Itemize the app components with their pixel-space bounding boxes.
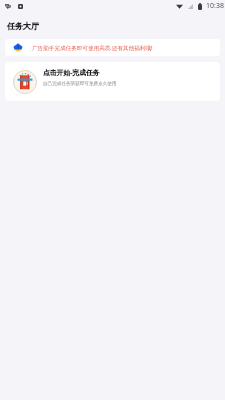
staticText: 10:38 (206, 1, 224, 11)
staticText: 广告助手完成任务即可使用高质,还有其他福利哦! (32, 44, 153, 52)
other: Wi-Fi (176, 3, 183, 9)
staticText: 任务大厅 (7, 21, 39, 31)
button[interactable]: 点击开始-完成任务 (5, 62, 220, 101)
button[interactable]: 广告助手完成任务即可使用高质,还有其他福利哦! (5, 39, 220, 56)
other: Mobile signal (188, 4, 193, 9)
other: App badge (18, 4, 23, 9)
other: Notification (5, 4, 11, 9)
staticText: 自己完成任务荣获即可免费永久使用 (43, 81, 117, 87)
staticText: 点击开始-完成任务 (43, 68, 100, 77)
other: Battery (198, 3, 202, 10)
